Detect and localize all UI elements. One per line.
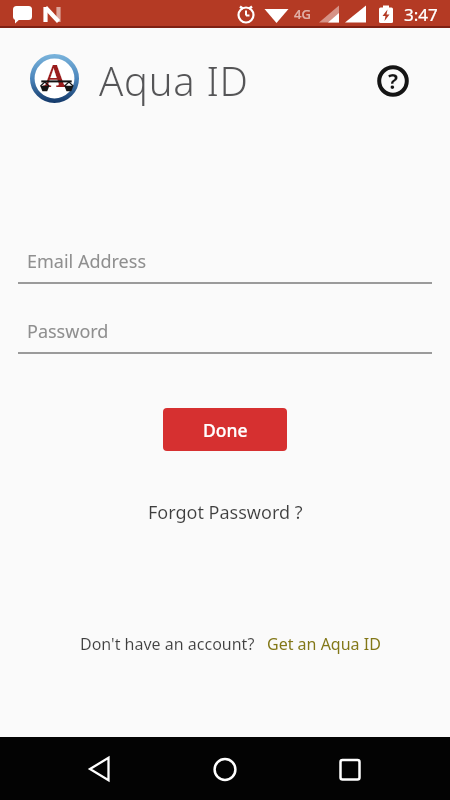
button[interactable] (60, 737, 140, 800)
staticText: ? (388, 67, 399, 96)
staticText: A (43, 54, 67, 96)
staticText: Aqua ID (99, 53, 249, 107)
button[interactable]: Get an Aqua ID (267, 633, 381, 655)
staticText: Done (203, 418, 248, 442)
staticText: Email Address (27, 249, 147, 274)
staticText: Password (27, 319, 109, 344)
staticText: 4G (294, 5, 311, 23)
staticText: 3:47 (404, 3, 438, 26)
staticText: Don't have an account? (80, 633, 255, 655)
button[interactable]: Done (163, 408, 287, 451)
button[interactable]: Forgot Password ? (148, 500, 303, 525)
button[interactable]: ? (377, 65, 409, 97)
button[interactable] (310, 737, 390, 800)
button[interactable] (185, 737, 265, 800)
